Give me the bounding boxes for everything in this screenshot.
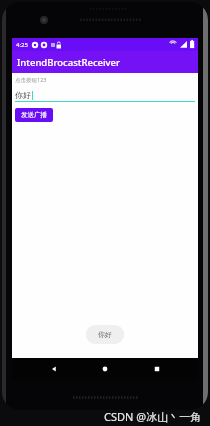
staticText: 点击按钮123 — [15, 76, 47, 84]
staticText: 你好 — [15, 90, 31, 100]
button[interactable]: Recent apps — [147, 359, 167, 379]
button[interactable]: 发送广播 — [15, 108, 53, 122]
staticText: 4:25 — [16, 41, 28, 49]
staticText: 发送广播 — [21, 111, 47, 119]
staticText: 你好 — [98, 330, 112, 339]
staticText: IntendBrocastReceiver — [17, 56, 121, 69]
staticText: CSDN @冰山丶一角 — [104, 409, 202, 424]
button[interactable]: Back — [44, 359, 64, 379]
button[interactable]: 你好 — [15, 88, 195, 102]
button[interactable]: Home — [95, 359, 115, 379]
